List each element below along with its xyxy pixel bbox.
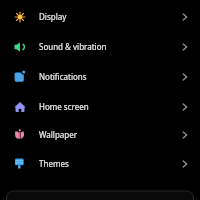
button[interactable]: Home screen bbox=[0, 92, 200, 121]
staticText: Notifications bbox=[39, 71, 87, 82]
button[interactable]: Themes bbox=[0, 149, 200, 178]
button[interactable]: Notifications bbox=[0, 62, 200, 91]
staticText: Display bbox=[39, 11, 67, 22]
button[interactable]: Sound & vibration bbox=[0, 32, 200, 61]
staticText: Wallpaper bbox=[39, 129, 78, 140]
staticText: Sound & vibration bbox=[39, 41, 107, 52]
button[interactable]: Wallpaper bbox=[0, 120, 200, 149]
staticText: Home screen bbox=[39, 101, 89, 112]
staticText: Themes bbox=[39, 158, 69, 169]
button[interactable]: Display bbox=[0, 2, 200, 31]
